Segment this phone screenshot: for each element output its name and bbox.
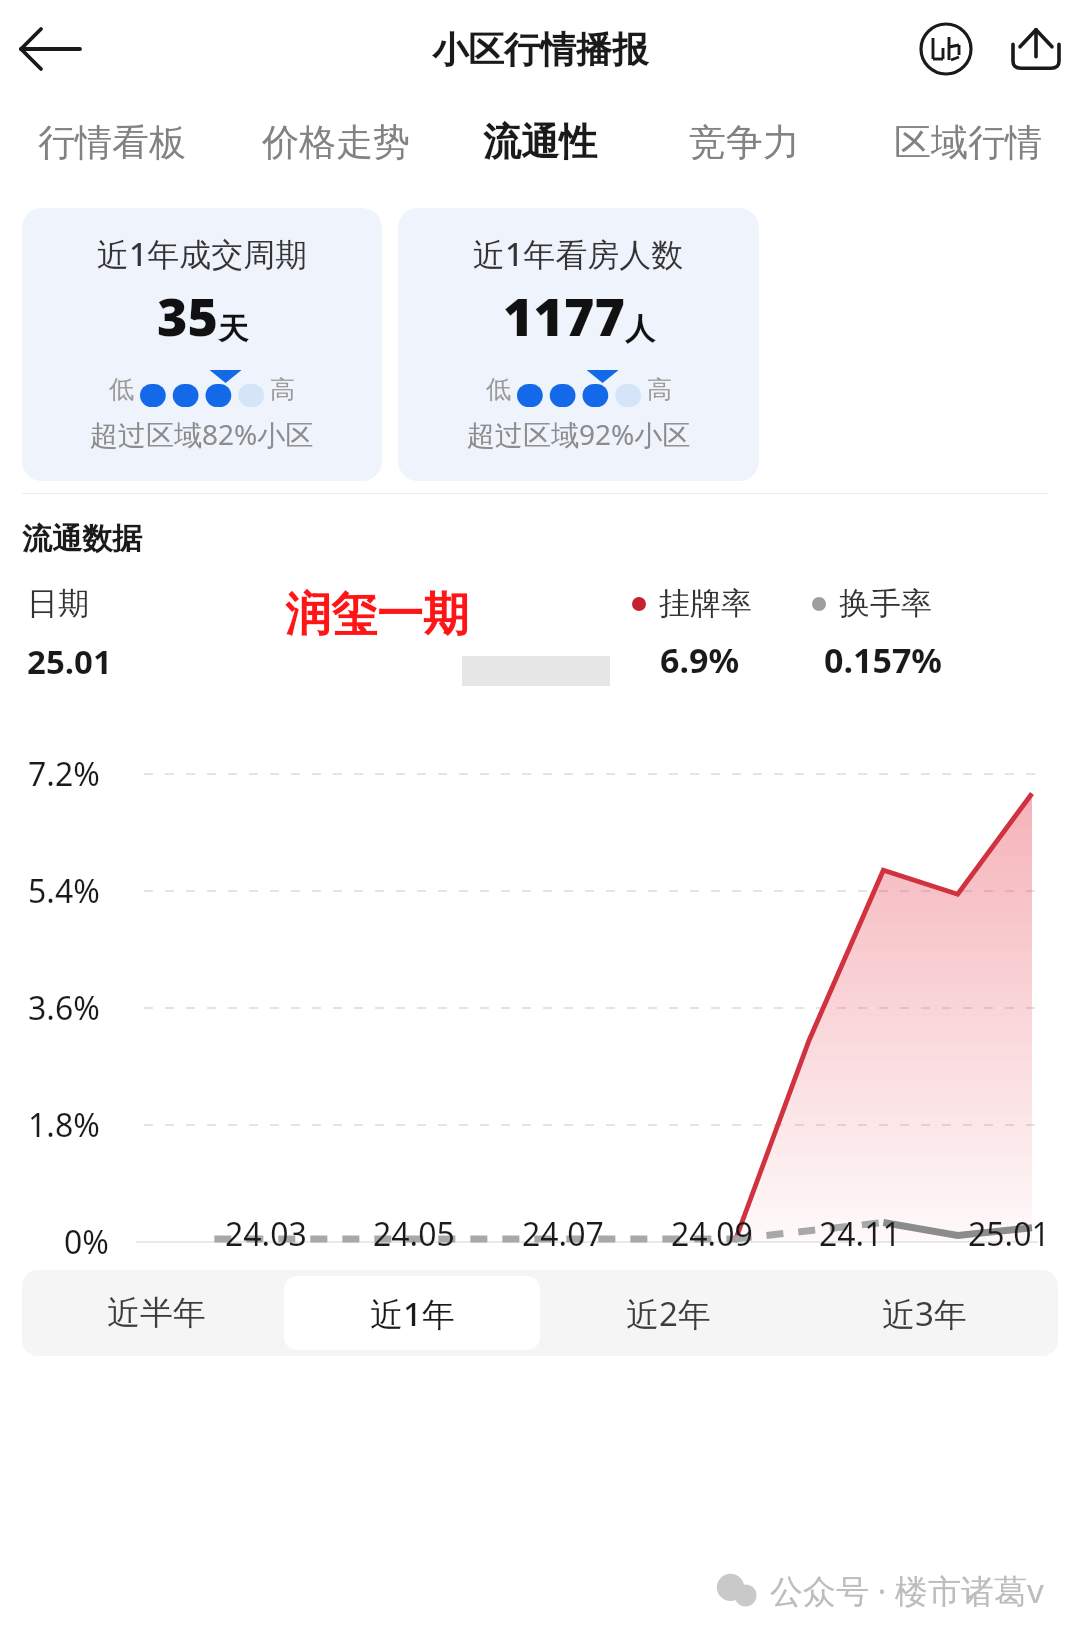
staticText: 小区行情播报 xyxy=(432,27,648,72)
staticText: 润玺一期 xyxy=(285,586,469,644)
staticText: 低 xyxy=(109,374,134,405)
button[interactable]: 价格走势 xyxy=(224,98,448,186)
staticText: 竞争力 xyxy=(689,119,800,166)
staticText: 近3年 xyxy=(882,1291,967,1336)
staticText: 低 xyxy=(486,374,511,405)
staticText: 1177 xyxy=(503,280,625,351)
staticText: 挂牌率 xyxy=(659,584,752,623)
button[interactable]: 区域行情 xyxy=(856,98,1080,186)
staticText: 近2年 xyxy=(626,1291,711,1336)
staticText: 高 xyxy=(647,374,672,405)
staticText: 24.07 xyxy=(522,1212,604,1256)
staticText: 行情看板 xyxy=(38,119,186,166)
staticText: 换手率 xyxy=(839,584,932,623)
staticText: 区域行情 xyxy=(894,119,1042,166)
staticText: 25.01 xyxy=(27,639,112,684)
staticText: 35 xyxy=(157,280,218,351)
button[interactable]: 对比 xyxy=(914,17,978,81)
button[interactable]: 近2年 xyxy=(540,1276,796,1350)
button[interactable]: 近3年 xyxy=(796,1276,1052,1350)
staticText: 7.2% xyxy=(28,752,100,796)
staticText: 高 xyxy=(270,374,295,405)
staticText: 24.03 xyxy=(225,1212,307,1256)
staticText: 24.11 xyxy=(819,1212,901,1256)
button[interactable]: 近1年成交周期 xyxy=(22,208,382,481)
staticText: 价格走势 xyxy=(262,119,410,166)
staticText: 超过区域92%小区 xyxy=(467,415,691,453)
button[interactable]: 流通性 xyxy=(448,98,632,186)
staticText: 6.9% xyxy=(660,637,740,683)
staticText: 近1年成交周期 xyxy=(97,232,308,276)
button[interactable]: Share xyxy=(1004,17,1068,81)
staticText: 0% xyxy=(64,1220,109,1264)
staticText: 近1年看房人数 xyxy=(473,232,684,276)
staticText: 近1年 xyxy=(370,1291,455,1336)
staticText: 1.8% xyxy=(28,1103,100,1147)
button[interactable]: Back xyxy=(16,14,86,84)
staticText: 天 xyxy=(218,310,248,348)
staticText: 超过区域82%小区 xyxy=(90,415,314,453)
staticText: 日期 xyxy=(27,584,89,623)
button[interactable]: 行情看板 xyxy=(0,98,224,186)
staticText: 3.6% xyxy=(28,986,100,1030)
button[interactable]: 近半年 xyxy=(28,1276,284,1350)
staticText: 0.157% xyxy=(824,637,943,683)
staticText: 流通性 xyxy=(483,118,597,166)
button[interactable]: 近1年 xyxy=(284,1276,540,1350)
staticText: 人 xyxy=(625,310,655,348)
staticText: 24.09 xyxy=(671,1212,753,1256)
button[interactable]: 近1年看房人数 xyxy=(398,208,759,481)
button[interactable]: 竞争力 xyxy=(632,98,856,186)
staticText: 近半年 xyxy=(107,1292,206,1334)
staticText: 公众号 · 楼市诸葛v xyxy=(770,1568,1044,1613)
staticText: 25.01 xyxy=(968,1212,1050,1256)
staticText: 5.4% xyxy=(28,869,100,913)
staticText: 流通数据 xyxy=(22,520,142,558)
staticText: 24.05 xyxy=(373,1212,455,1256)
